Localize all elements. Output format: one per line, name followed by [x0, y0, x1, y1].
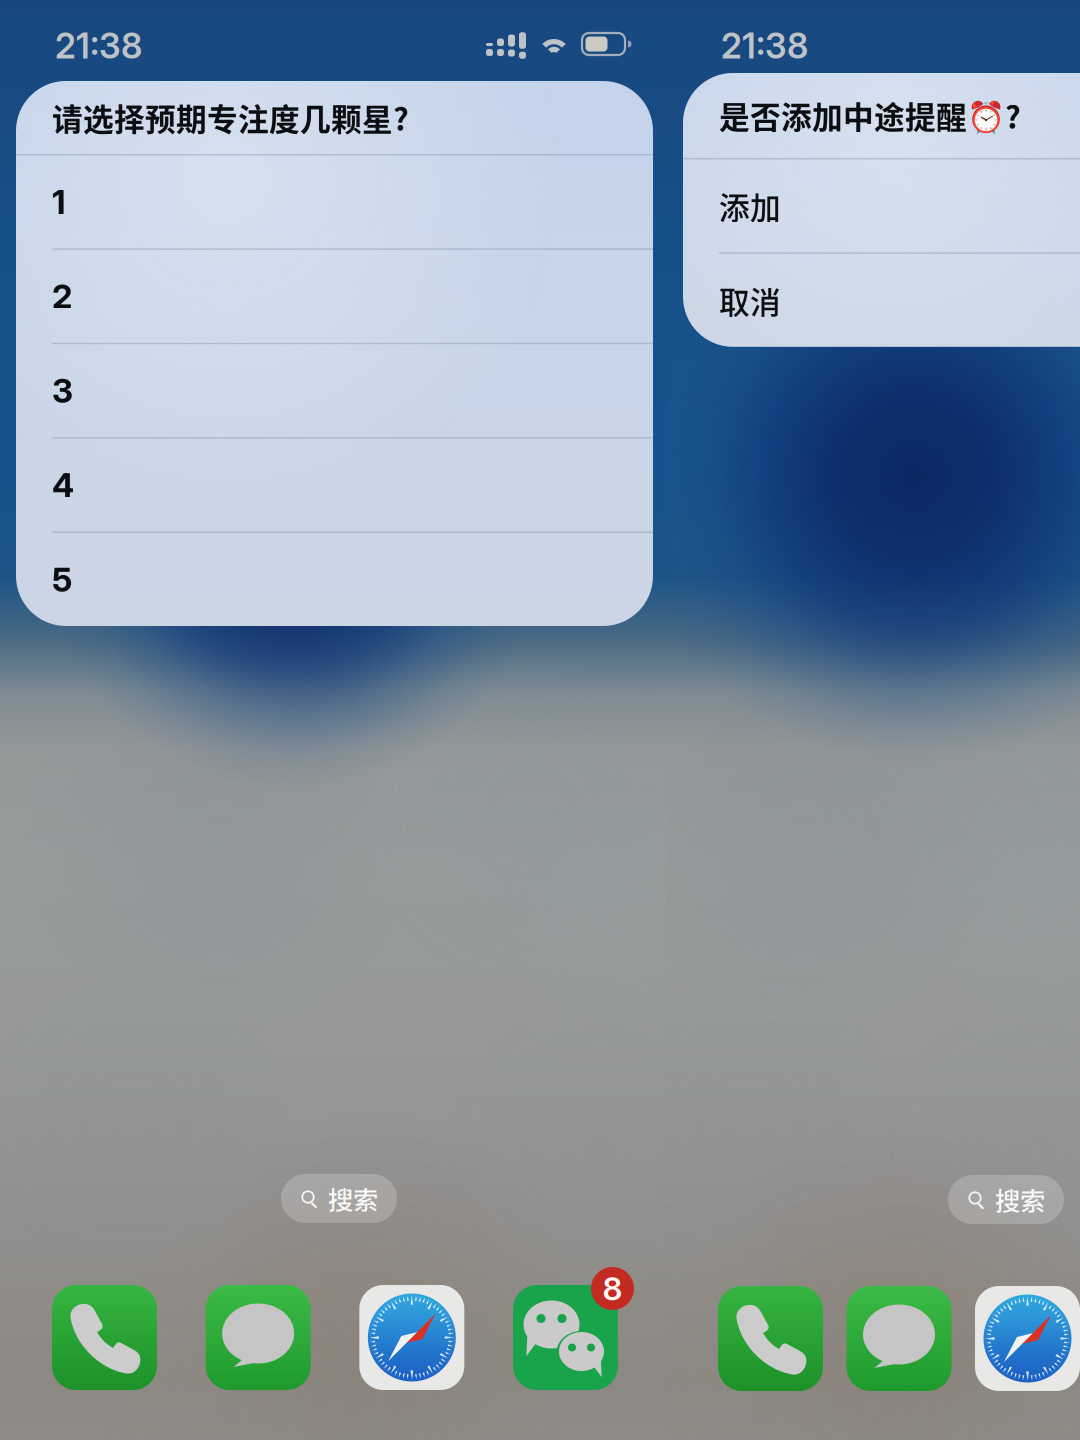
staticText: 8 — [602, 1269, 622, 1308]
button[interactable]: 取消 — [683, 254, 1080, 347]
staticText: 21:38 — [721, 25, 808, 67]
button[interactable]: 搜索 — [281, 1174, 397, 1223]
button[interactable]: 4 — [16, 439, 653, 532]
button[interactable]: Phone — [718, 1286, 823, 1391]
button[interactable]: 搜索 — [948, 1175, 1064, 1224]
staticText: 取消 — [719, 278, 781, 322]
button[interactable]: WeChat — [513, 1285, 618, 1390]
staticText: 1 — [52, 182, 66, 222]
button[interactable]: Safari — [975, 1286, 1080, 1391]
button[interactable]: Phone — [52, 1285, 157, 1390]
button[interactable]: 添加 — [683, 159, 1080, 252]
staticText: 添加 — [719, 184, 781, 228]
staticText: 请选择预期专注度几颗星? — [52, 95, 409, 140]
button[interactable]: 1 — [16, 155, 653, 248]
staticText: 搜索 — [328, 1180, 378, 1217]
button[interactable]: 5 — [16, 533, 653, 626]
button[interactable]: 2 — [16, 250, 653, 343]
staticText: 搜索 — [995, 1181, 1045, 1218]
button[interactable]: Messages — [206, 1285, 311, 1390]
staticText: 5 — [52, 559, 72, 600]
staticText: 21:38 — [55, 25, 142, 67]
staticText: 4 — [52, 465, 74, 505]
staticText: 是否添加中途提醒⏰? — [719, 93, 1021, 138]
staticText: 2 — [52, 276, 72, 316]
button[interactable]: Messages — [846, 1286, 951, 1391]
button[interactable]: 3 — [16, 344, 653, 437]
staticText: 3 — [52, 370, 73, 411]
button[interactable]: Safari — [359, 1285, 464, 1390]
